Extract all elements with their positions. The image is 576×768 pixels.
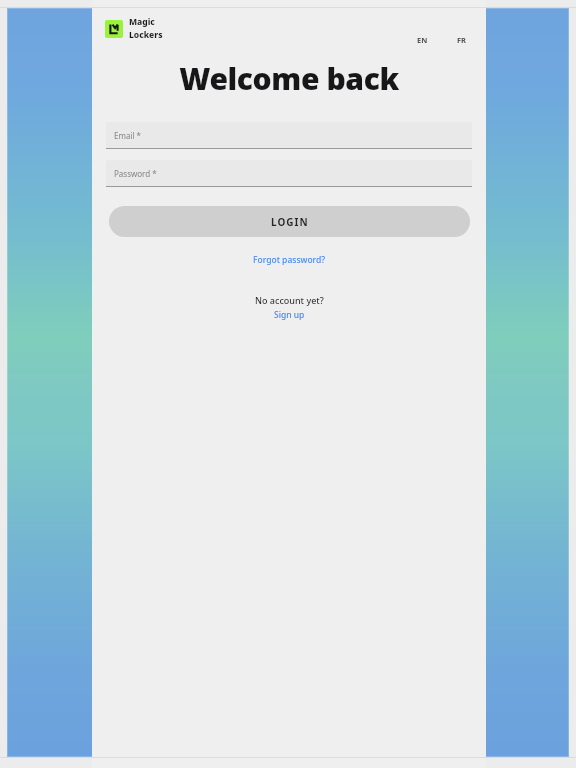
- staticText: FR: [457, 35, 467, 45]
- button[interactable]: Sign up: [268, 308, 311, 322]
- staticText: Password *: [114, 168, 157, 179]
- staticText: Magic: [129, 16, 155, 28]
- button[interactable]: Email *: [106, 122, 472, 149]
- staticText: Email *: [114, 130, 142, 141]
- staticText: LOGIN: [271, 215, 309, 229]
- button[interactable]: Password *: [106, 160, 472, 187]
- staticText: Forgot password?: [253, 254, 326, 266]
- button[interactable]: Forgot password?: [247, 252, 332, 268]
- staticText: Lockers: [129, 29, 163, 41]
- button[interactable]: EN: [412, 33, 433, 47]
- staticText: EN: [417, 35, 428, 45]
- button[interactable]: Magic: [105, 16, 163, 41]
- staticText: Sign up: [274, 309, 305, 321]
- button[interactable]: LOGIN: [109, 206, 470, 237]
- staticText: No account yet?: [255, 294, 324, 306]
- button[interactable]: FR: [452, 33, 472, 47]
- staticText: Welcome back: [179, 58, 399, 99]
